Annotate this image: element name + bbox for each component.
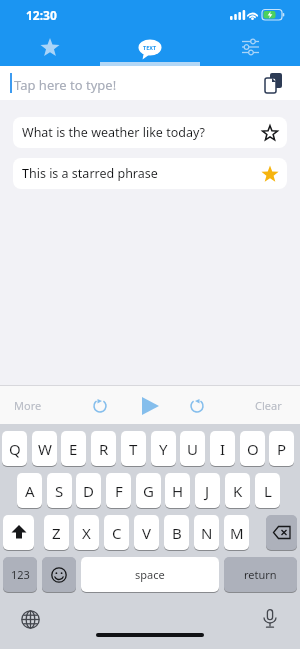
button[interactable]: J (195, 473, 220, 508)
staticText: Clear (255, 398, 282, 413)
button[interactable]: P (269, 431, 294, 466)
button[interactable] (0, 66, 300, 100)
staticText: L (264, 481, 272, 501)
button[interactable]: W (32, 431, 57, 466)
staticText: S (55, 481, 64, 501)
button[interactable] (20, 32, 80, 62)
button[interactable] (134, 392, 166, 420)
staticText: A (25, 481, 35, 501)
button[interactable]: Clear (246, 390, 290, 420)
button[interactable]: U (180, 431, 205, 466)
button[interactable]: E (61, 431, 86, 466)
staticText: B (172, 523, 182, 543)
button[interactable] (253, 117, 287, 148)
button[interactable]: C (104, 515, 129, 550)
staticText: What is the weather like today? (22, 124, 205, 141)
staticText: U (187, 439, 198, 459)
button[interactable]: D (76, 473, 101, 508)
staticText: Tap here to type! (14, 76, 117, 94)
button[interactable]: K (225, 473, 250, 508)
button[interactable] (12, 601, 48, 637)
button[interactable]: F (106, 473, 131, 508)
button[interactable]: L (255, 473, 280, 508)
staticText: R (99, 439, 109, 459)
button[interactable] (253, 158, 287, 189)
button[interactable]: N (194, 515, 219, 550)
staticText: W (38, 439, 52, 459)
button[interactable]: 123 (3, 557, 37, 592)
staticText: C (112, 523, 122, 543)
staticText: V (142, 523, 152, 543)
button[interactable]: O (240, 431, 265, 466)
staticText: D (83, 481, 94, 501)
staticText: T (129, 439, 138, 459)
staticText: F (115, 481, 123, 501)
button[interactable]: A (17, 473, 42, 508)
staticText: X (82, 523, 91, 543)
button[interactable] (86, 392, 114, 420)
staticText: Z (52, 523, 61, 543)
button[interactable] (183, 392, 211, 420)
staticText: H (172, 481, 184, 501)
staticText: Q (9, 439, 21, 459)
button[interactable] (3, 515, 34, 550)
button[interactable] (255, 68, 291, 98)
staticText: space (135, 567, 165, 582)
button[interactable]: H (165, 473, 190, 508)
staticText: K (233, 481, 243, 501)
button[interactable]: V (134, 515, 159, 550)
button[interactable]: What is the weather like today? (13, 117, 287, 148)
button[interactable]: X (74, 515, 99, 550)
staticText: TEXT (143, 44, 157, 51)
button[interactable]: TEXT (120, 32, 180, 62)
button[interactable]: More (6, 390, 50, 420)
button[interactable]: I (210, 431, 235, 466)
staticText: N (201, 523, 213, 543)
button[interactable]: B (164, 515, 189, 550)
button[interactable] (252, 601, 288, 637)
button[interactable]: M (224, 515, 249, 550)
staticText: M (230, 523, 244, 543)
staticText: 123 (11, 567, 30, 582)
staticText: This is a starred phrase (22, 165, 158, 182)
staticText: P (277, 439, 287, 459)
staticText: Y (159, 439, 168, 459)
staticText: E (69, 439, 78, 459)
button[interactable]: return (224, 557, 297, 592)
staticText: J (205, 481, 210, 501)
button[interactable]: R (91, 431, 116, 466)
button[interactable]: This is a starred phrase (13, 158, 287, 189)
staticText: G (143, 481, 154, 501)
staticText: return (244, 567, 277, 582)
button[interactable] (220, 32, 280, 62)
staticText: I (220, 439, 226, 459)
button[interactable]: T (121, 431, 146, 466)
staticText: O (247, 439, 259, 459)
button[interactable]: Q (2, 431, 27, 466)
button[interactable]: space (81, 557, 219, 592)
button[interactable]: Y (151, 431, 176, 466)
button[interactable]: S (47, 473, 72, 508)
button[interactable]: G (136, 473, 161, 508)
button[interactable] (42, 557, 76, 592)
staticText: 12:30 (26, 7, 57, 23)
button[interactable]: Z (44, 515, 69, 550)
staticText: More (14, 398, 42, 413)
button[interactable] (266, 515, 297, 550)
